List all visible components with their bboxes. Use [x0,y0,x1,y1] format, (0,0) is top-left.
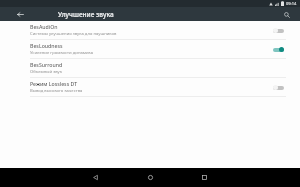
button[interactable]: Back [86,168,105,187]
button[interactable]: On [270,43,286,55]
staticText: BesLoudness [30,42,63,49]
staticText: Режим Lossless DT [30,80,78,87]
staticText: BesSurround [30,61,63,68]
staticText: Вывод высокого качества [30,88,83,94]
button[interactable]: Recent apps [195,168,214,187]
button[interactable]: Search [280,8,293,21]
staticText: Системы улучшения звука для наушников [30,31,117,37]
staticText: Объемный звук [30,69,62,75]
button[interactable]: BesSurround [0,59,300,77]
button[interactable]: Режим Lossless DT [0,78,300,96]
button[interactable]: BesLoudness [0,40,300,58]
button[interactable]: BesAudiOn [0,21,300,39]
button[interactable]: Home [141,168,160,187]
staticText: Усиление громкости динамика [30,50,94,56]
button[interactable]: Off [270,81,286,93]
staticText: Улучшение звука [58,10,114,19]
button[interactable]: Back [13,7,27,21]
staticText: 09:14 [286,1,297,6]
staticText: BesAudiOn [30,23,58,30]
button[interactable]: Off [270,24,286,36]
